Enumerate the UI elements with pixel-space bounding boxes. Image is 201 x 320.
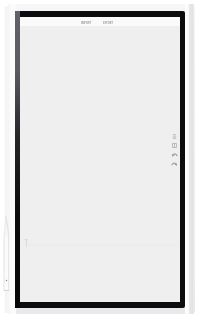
button[interactable]: EXPORT	[100, 20, 116, 26]
button[interactable]: Pages	[170, 132, 179, 141]
button[interactable]: Crop	[170, 141, 179, 150]
staticText: IMPORT	[81, 21, 92, 25]
button[interactable]: IMPORT	[78, 20, 95, 26]
button[interactable]: Undo	[170, 150, 179, 159]
staticText: EXPORT	[103, 21, 113, 25]
button[interactable]: Redo	[170, 159, 179, 168]
button[interactable]: Stylus	[2, 216, 12, 291]
